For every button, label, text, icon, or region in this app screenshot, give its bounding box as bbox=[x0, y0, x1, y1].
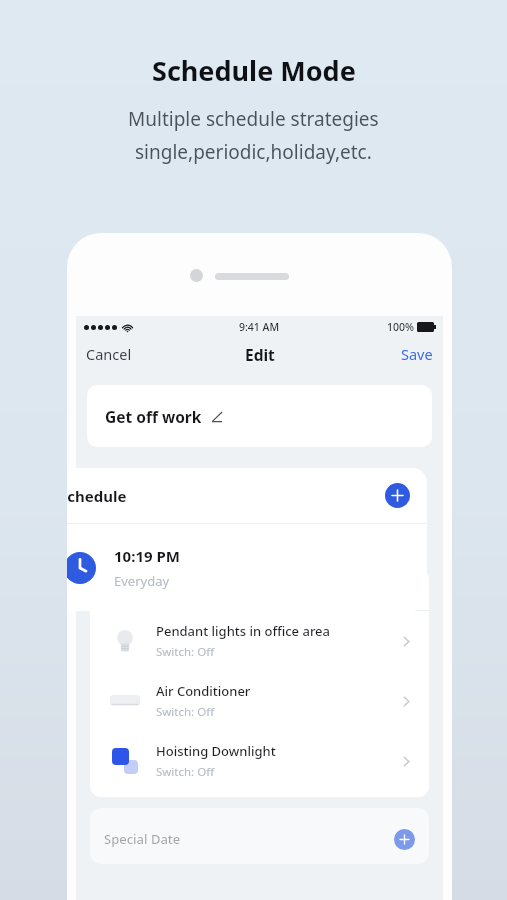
staticText: Task bbox=[104, 581, 134, 599]
button[interactable]: Air Conditioner bbox=[90, 671, 429, 731]
button[interactable]: Cancel bbox=[76, 344, 142, 364]
staticText: Schedule Mode bbox=[152, 52, 356, 89]
button[interactable]: Get off work bbox=[87, 385, 432, 447]
staticText: Switch: Off bbox=[156, 764, 215, 780]
staticText: Hoisting Downlight bbox=[156, 742, 276, 760]
staticText: Schedule bbox=[67, 486, 127, 506]
staticText: 100% bbox=[387, 320, 414, 334]
button[interactable]: Pendant lights in office area bbox=[90, 611, 429, 671]
staticText: Cancel bbox=[86, 344, 132, 364]
staticText: 9:41 AM bbox=[239, 320, 280, 334]
staticText: Get off work bbox=[105, 406, 202, 427]
staticText: Multiple schedule strategies bbox=[128, 106, 379, 132]
button[interactable]: Hoisting Downlight bbox=[90, 731, 429, 791]
staticText: Save bbox=[401, 344, 433, 364]
staticText: single,periodic,holiday,etc. bbox=[135, 139, 372, 165]
button[interactable]: 10:19 PM bbox=[67, 524, 427, 611]
staticText: Switch: Off bbox=[156, 644, 215, 660]
staticText: Switch: Off bbox=[156, 704, 215, 720]
staticText: Edit bbox=[245, 344, 275, 365]
staticText: Air Conditioner bbox=[156, 682, 251, 700]
staticText: Pendant lights in office area bbox=[156, 622, 331, 640]
button[interactable]: Add schedule bbox=[385, 483, 410, 508]
staticText: Everyday bbox=[114, 572, 170, 590]
staticText: 10:19 PM bbox=[114, 546, 180, 566]
button[interactable]: Save bbox=[391, 344, 443, 364]
button[interactable]: Special Date bbox=[90, 808, 429, 864]
staticText: Special Date bbox=[104, 830, 181, 848]
